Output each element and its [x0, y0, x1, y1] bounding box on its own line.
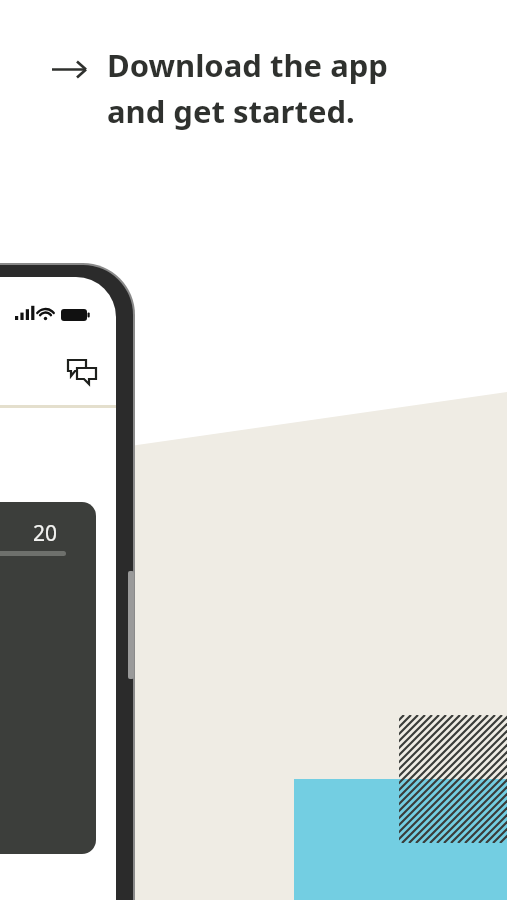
staticText: 20	[33, 519, 58, 548]
staticText: Download the app and get started.	[107, 44, 388, 132]
button[interactable]: 20	[0, 502, 96, 854]
other: Status icons	[15, 303, 100, 327]
button[interactable]: Messages	[65, 357, 99, 387]
